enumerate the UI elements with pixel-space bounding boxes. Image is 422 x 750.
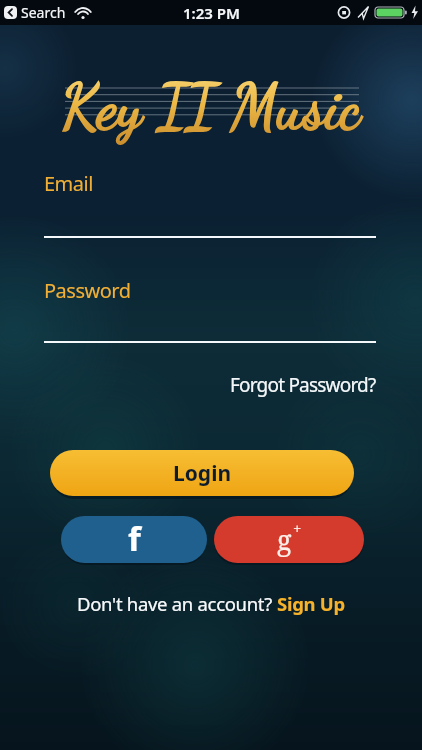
button[interactable]: f <box>61 516 207 563</box>
staticText: Password <box>44 277 131 304</box>
button[interactable] <box>4 6 17 19</box>
staticText: Email <box>44 170 93 197</box>
staticText: + <box>293 518 302 538</box>
staticText: f <box>128 516 141 561</box>
button[interactable] <box>44 206 376 238</box>
staticText: g <box>277 521 292 558</box>
button[interactable]: Login <box>50 450 354 496</box>
button[interactable]: Don't have an account? <box>0 591 422 616</box>
staticText: Sign Up <box>277 591 345 616</box>
button[interactable]: Forgot Password? <box>230 372 376 398</box>
staticText: Don't have an account? <box>77 591 277 616</box>
staticText: 1:23 PM <box>183 3 240 23</box>
button[interactable] <box>44 311 376 343</box>
button[interactable]: g <box>214 516 364 563</box>
staticText: Login <box>173 459 232 488</box>
staticText: Search <box>21 3 66 22</box>
staticText: Key II Music <box>0 70 422 144</box>
